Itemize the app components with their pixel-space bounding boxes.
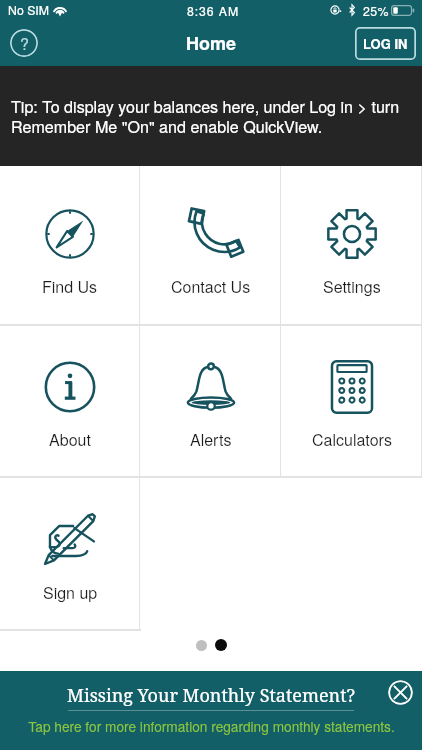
button[interactable]: LOG IN bbox=[355, 27, 416, 60]
staticText: Contact Us bbox=[171, 275, 251, 298]
button[interactable]: Alerts bbox=[140, 326, 281, 476]
button[interactable]: Settings bbox=[281, 166, 422, 324]
staticText: Home bbox=[186, 30, 237, 56]
staticText: Alerts bbox=[190, 428, 232, 451]
button[interactable]: Calculators bbox=[281, 326, 422, 476]
staticText: ? bbox=[20, 32, 29, 55]
staticText: Find Us bbox=[42, 275, 98, 298]
button[interactable]: Find Us bbox=[0, 166, 140, 324]
staticText: Tip: To display your balances here, unde… bbox=[11, 95, 408, 138]
staticText: 8:36 AM bbox=[187, 2, 240, 20]
staticText: Tap here for more information regarding … bbox=[28, 716, 395, 736]
staticText: Missing Your Monthly Statement? bbox=[67, 683, 355, 708]
button[interactable]: Help bbox=[10, 29, 38, 57]
staticText: No SIM bbox=[8, 1, 49, 19]
button[interactable]: About bbox=[0, 326, 140, 476]
staticText: Calculators bbox=[312, 428, 392, 451]
button[interactable]: Missing Your Monthly Statement? bbox=[0, 671, 422, 750]
staticText: About bbox=[49, 428, 91, 451]
button[interactable]: Sign up bbox=[0, 478, 140, 629]
staticText: 25% bbox=[363, 2, 389, 20]
staticText: LOG IN bbox=[363, 34, 408, 53]
staticText: Settings bbox=[323, 275, 381, 298]
button[interactable]: Close bbox=[388, 680, 413, 705]
button[interactable]: Contact Us bbox=[140, 166, 281, 324]
staticText: Sign up bbox=[43, 581, 98, 604]
